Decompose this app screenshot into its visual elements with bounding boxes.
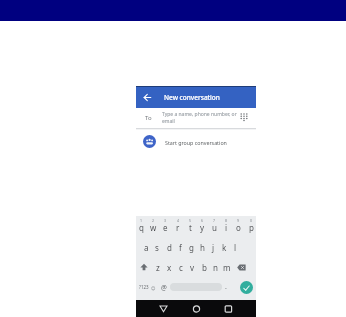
- staticText: g: [189, 242, 194, 253]
- staticText: 0: [250, 218, 253, 223]
- button[interactable]: [140, 263, 148, 271]
- staticText: 9: [237, 218, 240, 223]
- staticText: i: [225, 222, 228, 233]
- staticText: j: [212, 242, 215, 253]
- button[interactable]: [143, 93, 152, 102]
- staticText: New conversation: [164, 93, 220, 102]
- staticText: 5: [189, 218, 192, 223]
- staticText: x: [167, 262, 172, 273]
- button[interactable]: [224, 305, 233, 313]
- staticText: ?123: [139, 284, 149, 290]
- staticText: Type a name, phone number, or email: [162, 111, 237, 125]
- button[interactable]: [237, 264, 246, 271]
- staticText: l: [234, 242, 237, 253]
- staticText: 2: [152, 218, 155, 223]
- staticText: e: [163, 222, 168, 233]
- staticText: u: [212, 222, 217, 233]
- staticText: b: [202, 262, 207, 273]
- staticText: y: [200, 222, 205, 233]
- staticText: q: [139, 222, 144, 233]
- staticText: z: [156, 262, 160, 273]
- staticText: 8: [225, 218, 228, 223]
- staticText: 3: [164, 218, 167, 223]
- button[interactable]: [159, 305, 168, 313]
- button[interactable]: [192, 305, 201, 313]
- button[interactable]: Start group conversation: [136, 130, 256, 154]
- staticText: 4: [177, 218, 180, 223]
- staticText: o: [236, 222, 241, 233]
- button[interactable]: [240, 113, 248, 122]
- staticText: t: [189, 222, 192, 233]
- staticText: To: [145, 114, 152, 122]
- staticText: 6: [201, 218, 204, 223]
- staticText: 7: [213, 218, 216, 223]
- staticText: d: [167, 242, 172, 253]
- staticText: .: [225, 282, 227, 292]
- staticText: r: [176, 222, 180, 233]
- staticText: v: [190, 262, 195, 273]
- staticText: ☺: [151, 286, 156, 291]
- staticText: h: [200, 242, 205, 253]
- staticText: a: [144, 242, 149, 253]
- staticText: Start group conversation: [165, 139, 227, 146]
- staticText: f: [179, 242, 182, 253]
- staticText: m: [223, 262, 231, 273]
- staticText: n: [213, 262, 218, 273]
- staticText: p: [249, 222, 254, 233]
- button[interactable]: To: [136, 108, 256, 128]
- staticText: w: [150, 222, 157, 233]
- staticText: k: [222, 242, 227, 253]
- staticText: @: [161, 283, 167, 292]
- staticText: 1: [140, 218, 143, 223]
- staticText: c: [179, 262, 183, 273]
- button[interactable]: [240, 281, 253, 294]
- staticText: s: [155, 242, 159, 253]
